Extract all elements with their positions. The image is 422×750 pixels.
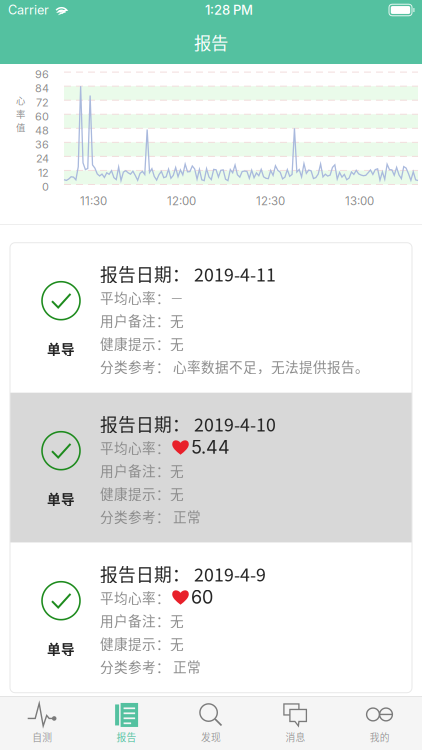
staticText: 正常 <box>170 656 201 676</box>
staticText: 正常 <box>170 506 201 526</box>
staticText: 12:00 <box>167 194 196 208</box>
staticText: 平均心率： <box>100 587 170 607</box>
button[interactable]: 发现 <box>169 697 253 750</box>
staticText: 72 <box>36 96 49 109</box>
staticText: 60 <box>35 110 49 123</box>
staticText: 率 <box>16 107 25 120</box>
staticText: 用户备注： <box>100 310 170 330</box>
staticText: 5.44 <box>191 436 230 458</box>
staticText: 平均心率： <box>100 437 170 457</box>
staticText: 96 <box>35 68 49 81</box>
staticText: 13:00 <box>345 194 374 208</box>
button[interactable]: 我的 <box>338 697 422 750</box>
staticText: 12:30 <box>256 194 285 208</box>
staticText: 12 <box>38 166 49 179</box>
staticText: 24 <box>36 152 49 165</box>
staticText: 11:30 <box>80 194 107 208</box>
staticText: Carrier <box>8 2 49 18</box>
staticText: 无 <box>170 310 184 330</box>
staticText: 分类参考： <box>100 656 170 676</box>
staticText: 报告 <box>117 730 137 744</box>
staticText: 健康提示： <box>100 483 170 503</box>
staticText: 1:28 PM <box>205 2 253 18</box>
staticText: 用户备注： <box>100 460 170 480</box>
staticText: 单导 <box>47 489 75 508</box>
staticText: 健康提示： <box>100 333 170 353</box>
staticText: 单导 <box>47 639 75 658</box>
staticText: 心 <box>16 93 25 107</box>
button[interactable]: 自测 <box>0 697 84 750</box>
staticText: 发现 <box>201 730 221 744</box>
button[interactable]: 报告 <box>84 697 169 750</box>
button[interactable]: 单导 <box>10 393 412 543</box>
staticText: 单导 <box>47 339 75 358</box>
staticText: 自测 <box>32 730 52 744</box>
staticText: 报告日期： 2019-4-11 <box>100 261 276 287</box>
staticText: 无 <box>170 633 184 653</box>
staticText: 48 <box>35 124 49 137</box>
button[interactable]: 单导 <box>10 543 412 693</box>
staticText: 健康提示： <box>100 633 170 653</box>
staticText: － <box>170 287 184 307</box>
staticText: 分类参考： <box>100 506 170 526</box>
staticText: 36 <box>35 138 49 151</box>
button[interactable]: 消息 <box>253 697 338 750</box>
staticText: 无 <box>170 483 184 503</box>
staticText: 报告日期： 2019-4-10 <box>100 411 276 437</box>
staticText: 消息 <box>285 730 305 744</box>
staticText: 84 <box>35 82 49 95</box>
staticText: 无 <box>170 460 184 480</box>
button[interactable]: 报告 <box>0 20 422 64</box>
staticText: 报告日期： 2019-4-9 <box>100 561 266 587</box>
staticText: 无 <box>170 610 184 630</box>
staticText: 用户备注： <box>100 610 170 630</box>
staticText: 平均心率： <box>100 287 170 307</box>
staticText: 报告 <box>194 29 228 55</box>
staticText: 无 <box>170 333 184 353</box>
staticText: 0 <box>42 180 49 193</box>
button[interactable]: 单导 <box>10 243 412 393</box>
staticText: 分类参考： <box>100 356 170 376</box>
staticText: 60 <box>191 586 213 608</box>
staticText: 值 <box>16 120 25 134</box>
staticText: 我的 <box>370 730 390 744</box>
staticText: 心率数据不足，无法提供报告。 <box>170 356 369 376</box>
